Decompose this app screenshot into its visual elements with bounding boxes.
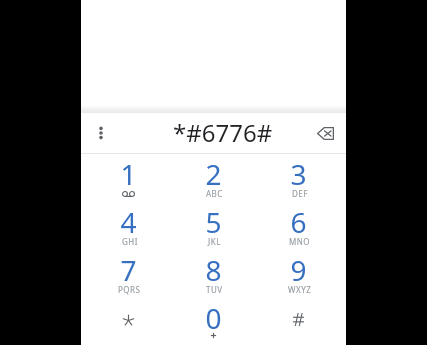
staticText: JKL bbox=[208, 236, 221, 247]
staticText: 5 bbox=[205, 203, 222, 241]
staticText: WXYZ bbox=[288, 284, 312, 295]
button[interactable]: More options bbox=[85, 117, 117, 149]
staticText: 9 bbox=[290, 251, 307, 289]
staticText: ABC bbox=[206, 188, 223, 199]
staticText: 0 bbox=[205, 299, 222, 337]
button[interactable]: 1 bbox=[86, 155, 171, 203]
button[interactable]: 6 bbox=[256, 203, 341, 251]
staticText: 1 bbox=[120, 155, 137, 193]
staticText: 6 bbox=[290, 203, 307, 241]
button[interactable]: 5 bbox=[171, 203, 256, 251]
staticText: *#6776# bbox=[173, 116, 273, 149]
button[interactable]: *#6776# bbox=[81, 113, 346, 153]
staticText: TUV bbox=[206, 284, 223, 295]
staticText: DEF bbox=[292, 188, 308, 199]
staticText: 4 bbox=[120, 203, 137, 241]
staticText: GHI bbox=[122, 236, 138, 247]
button[interactable]: 4 bbox=[86, 203, 171, 251]
staticText: 2 bbox=[205, 155, 222, 193]
staticText: PQRS bbox=[118, 284, 141, 295]
staticText: 8 bbox=[205, 251, 222, 289]
button[interactable]: pound bbox=[256, 299, 341, 345]
button[interactable]: 9 bbox=[256, 251, 341, 299]
button[interactable]: Backspace bbox=[309, 117, 341, 149]
button[interactable]: 3 bbox=[256, 155, 341, 203]
button[interactable]: star bbox=[86, 299, 171, 345]
button[interactable]: 2 bbox=[171, 155, 256, 203]
button[interactable]: 8 bbox=[171, 251, 256, 299]
staticText: MNO bbox=[289, 236, 311, 247]
button[interactable]: 7 bbox=[86, 251, 171, 299]
staticText: 3 bbox=[290, 155, 307, 193]
button[interactable]: 0 bbox=[171, 299, 256, 345]
staticText: 7 bbox=[120, 251, 137, 289]
